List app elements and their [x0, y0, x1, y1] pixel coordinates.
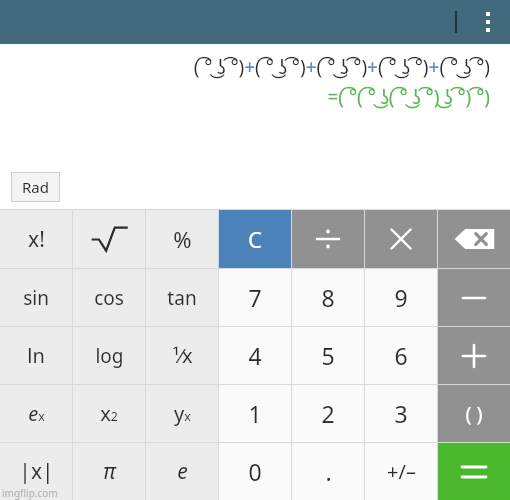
button[interactable]: 6	[365, 327, 437, 384]
button[interactable]: .	[292, 443, 364, 500]
staticText: +/–	[387, 458, 416, 485]
staticText: x2	[100, 400, 118, 427]
button[interactable]: 0	[219, 443, 291, 500]
button[interactable]: 8	[292, 269, 364, 326]
button[interactable]: sin	[0, 269, 72, 326]
staticText: 4	[248, 340, 262, 371]
button[interactable]: π	[73, 443, 145, 500]
staticText: C	[248, 224, 262, 254]
button[interactable]: Backspace	[438, 210, 510, 268]
staticText: log	[95, 343, 124, 369]
button[interactable]: ¹⁄x	[146, 327, 218, 384]
staticText: yx	[174, 400, 191, 427]
button[interactable]: log	[73, 327, 145, 384]
button[interactable]: +/–	[365, 443, 437, 500]
button[interactable]: Divide	[292, 210, 364, 268]
button[interactable]: x2	[73, 385, 145, 442]
staticText: 1	[248, 398, 262, 429]
staticText: ln	[27, 342, 45, 369]
button[interactable]: 5	[292, 327, 364, 384]
staticText: Rad	[22, 177, 49, 197]
button[interactable]: Plus	[438, 327, 510, 384]
staticText: ( ͡° ͜ʖ ͡°)+( ͡° ͜ʖ ͡°)+( ͡° ͜ʖ ͡°)+( ͡°…	[193, 54, 490, 80]
button[interactable]: 2	[292, 385, 364, 442]
button[interactable]: Equals	[438, 443, 510, 500]
staticText: 2	[321, 398, 335, 429]
button[interactable]: ( )	[438, 385, 510, 442]
staticText: e	[177, 457, 188, 486]
button[interactable]: %	[146, 210, 218, 268]
button[interactable]: 7	[219, 269, 291, 326]
button[interactable]: Minus	[438, 269, 510, 326]
staticText: ( )	[465, 400, 483, 427]
button[interactable]: |x|	[0, 443, 72, 500]
staticText: 0	[248, 456, 262, 487]
staticText: ex	[28, 400, 45, 427]
button[interactable]: C	[219, 210, 291, 268]
staticText: 7	[248, 282, 262, 313]
staticText: ¹⁄x	[172, 342, 193, 369]
staticText: cos	[94, 285, 124, 311]
staticText: π	[103, 457, 116, 486]
staticText: .	[325, 456, 332, 487]
button[interactable]: Multiply	[365, 210, 437, 268]
staticText: sin	[23, 285, 49, 311]
staticText: tan	[167, 285, 197, 311]
button[interactable]: SquareRoot	[73, 210, 145, 268]
button[interactable]: 1	[219, 385, 291, 442]
staticText: x!	[28, 225, 45, 254]
button[interactable]: tan	[146, 269, 218, 326]
staticText: %	[173, 224, 192, 254]
button[interactable]: yx	[146, 385, 218, 442]
button[interactable]: More options	[466, 0, 510, 44]
button[interactable]: x!	[0, 210, 72, 268]
staticText: 5	[321, 340, 335, 371]
staticText: |x|	[19, 457, 54, 486]
button[interactable]: 9	[365, 269, 437, 326]
button[interactable]: ex	[0, 385, 72, 442]
staticText: 9	[394, 282, 408, 313]
staticText: =( ͡°( ͡° ͜ʖ( ͡° ͜ʖ ͡°) ͜ʖ ͡°) ͡°)	[327, 84, 490, 110]
button[interactable]: cos	[73, 269, 145, 326]
button[interactable]: 3	[365, 385, 437, 442]
staticText: 6	[394, 340, 408, 371]
staticText: 8	[321, 282, 335, 313]
staticText: 3	[394, 398, 408, 429]
button[interactable]: ln	[0, 327, 72, 384]
button[interactable]: Rad	[22, 177, 49, 197]
button[interactable]: 4	[219, 327, 291, 384]
staticText: imgflip.com	[2, 486, 58, 500]
button[interactable]: e	[146, 443, 218, 500]
